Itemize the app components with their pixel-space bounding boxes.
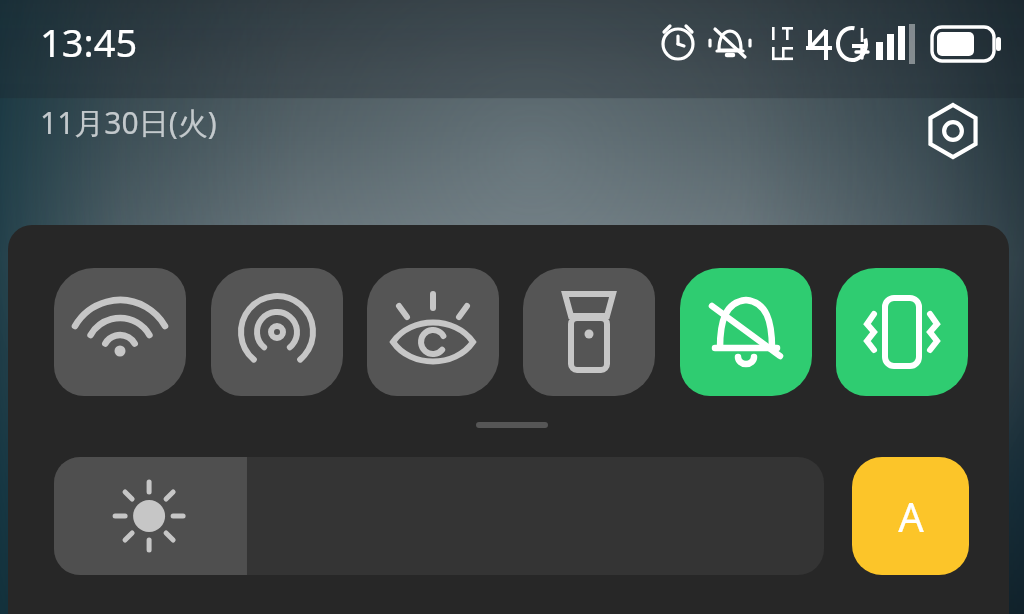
button[interactable]: Hotspot	[211, 268, 343, 396]
button[interactable]: Flashlight	[523, 268, 655, 396]
button[interactable]: Silent mode	[680, 268, 812, 396]
staticText: A	[898, 489, 924, 543]
staticText: 13:45	[40, 16, 138, 68]
button[interactable]: Brightness	[54, 457, 824, 575]
button[interactable]: A	[852, 457, 969, 575]
button[interactable]: Settings	[922, 100, 984, 162]
button[interactable]: Reading mode	[367, 268, 499, 396]
button[interactable]: Vibrate	[836, 268, 968, 396]
staticText: 11月30日(火)	[40, 102, 217, 143]
button[interactable]: Wi-Fi	[54, 268, 186, 396]
